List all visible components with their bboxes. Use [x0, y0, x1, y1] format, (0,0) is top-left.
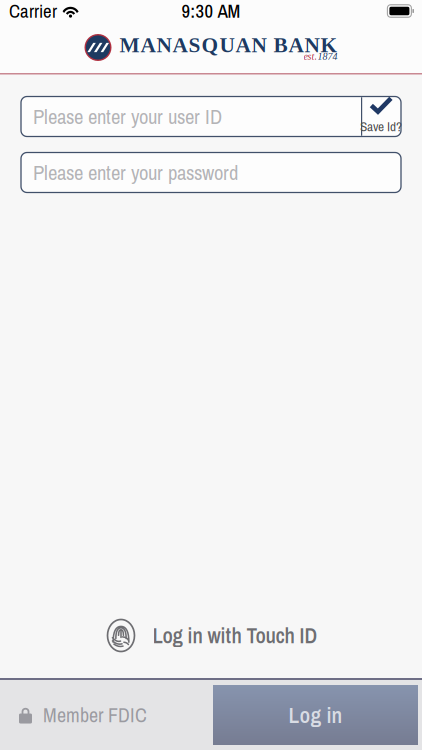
staticText: 1874: [317, 51, 337, 62]
button[interactable]: Save Id?: [361, 97, 401, 136]
button[interactable]: Log in: [213, 685, 418, 745]
staticText: Log in: [288, 700, 342, 730]
staticText: Member FDIC: [43, 701, 147, 728]
staticText: Please enter your user ID: [33, 103, 222, 130]
button[interactable]: Log in with Touch ID: [104, 609, 317, 662]
staticText: est.: [303, 51, 317, 62]
staticText: Save Id?: [360, 117, 402, 135]
staticText: Log in with Touch ID: [152, 621, 317, 650]
staticText: MANASQUAN BANK: [119, 33, 337, 57]
staticText: Please enter your password: [33, 159, 238, 186]
staticText: 9:30 AM: [181, 0, 240, 23]
staticText: Carrier: [9, 0, 57, 23]
